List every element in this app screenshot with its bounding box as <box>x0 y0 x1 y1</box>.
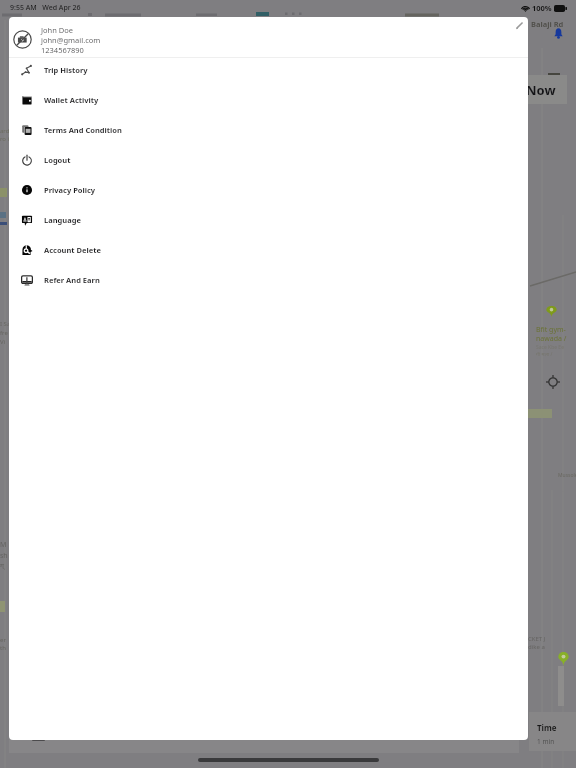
button[interactable]: Terms And Condition <box>9 115 528 145</box>
staticText: ard ro i <box>0 127 10 143</box>
staticText: M sh ग् <box>0 540 8 570</box>
staticText: Logout <box>44 155 71 165</box>
staticText: Privacy Policy <box>44 185 96 195</box>
button[interactable]: Account Delete <box>9 235 528 265</box>
staticText: Balaji Rd <box>531 19 564 29</box>
staticText: 1 min <box>537 737 555 746</box>
staticText: 1234567890 <box>41 45 84 55</box>
staticText: Trip History <box>44 65 88 75</box>
staticText: Wallet Activity <box>44 95 99 105</box>
button[interactable]: Trip History <box>9 55 528 85</box>
staticText: Now <box>526 81 556 99</box>
staticText: CKET J dike a <box>528 635 546 651</box>
staticText: Terms And Condition <box>44 125 122 135</box>
staticText: Refer And Earn <box>44 275 100 285</box>
staticText: 9:55 AM Wed Apr 26 <box>10 3 81 13</box>
button[interactable]: Refer And Earn <box>9 265 528 295</box>
staticText: Mussole Rd <box>558 472 576 479</box>
button[interactable]: Wallet Activity <box>9 85 528 115</box>
staticText: Bfit gym- nawada / <box>536 325 567 343</box>
button[interactable]: Language <box>9 205 528 235</box>
staticText: john@gmail.com <box>41 35 101 45</box>
button[interactable]: Privacy Policy <box>9 175 528 205</box>
staticText: Language <box>44 215 81 225</box>
button[interactable]: Edit profile <box>511 17 528 34</box>
staticText: Time <box>537 722 557 733</box>
staticText: Sace Kbe Ee गी मला / <box>536 344 564 358</box>
staticText: 100% <box>532 3 552 13</box>
button[interactable]: Logout <box>9 145 528 175</box>
staticText: I Sa fre Vi <box>0 320 11 346</box>
staticText: John Doe <box>41 25 74 35</box>
staticText: Account Delete <box>44 245 101 255</box>
staticText: er th <box>0 636 6 652</box>
